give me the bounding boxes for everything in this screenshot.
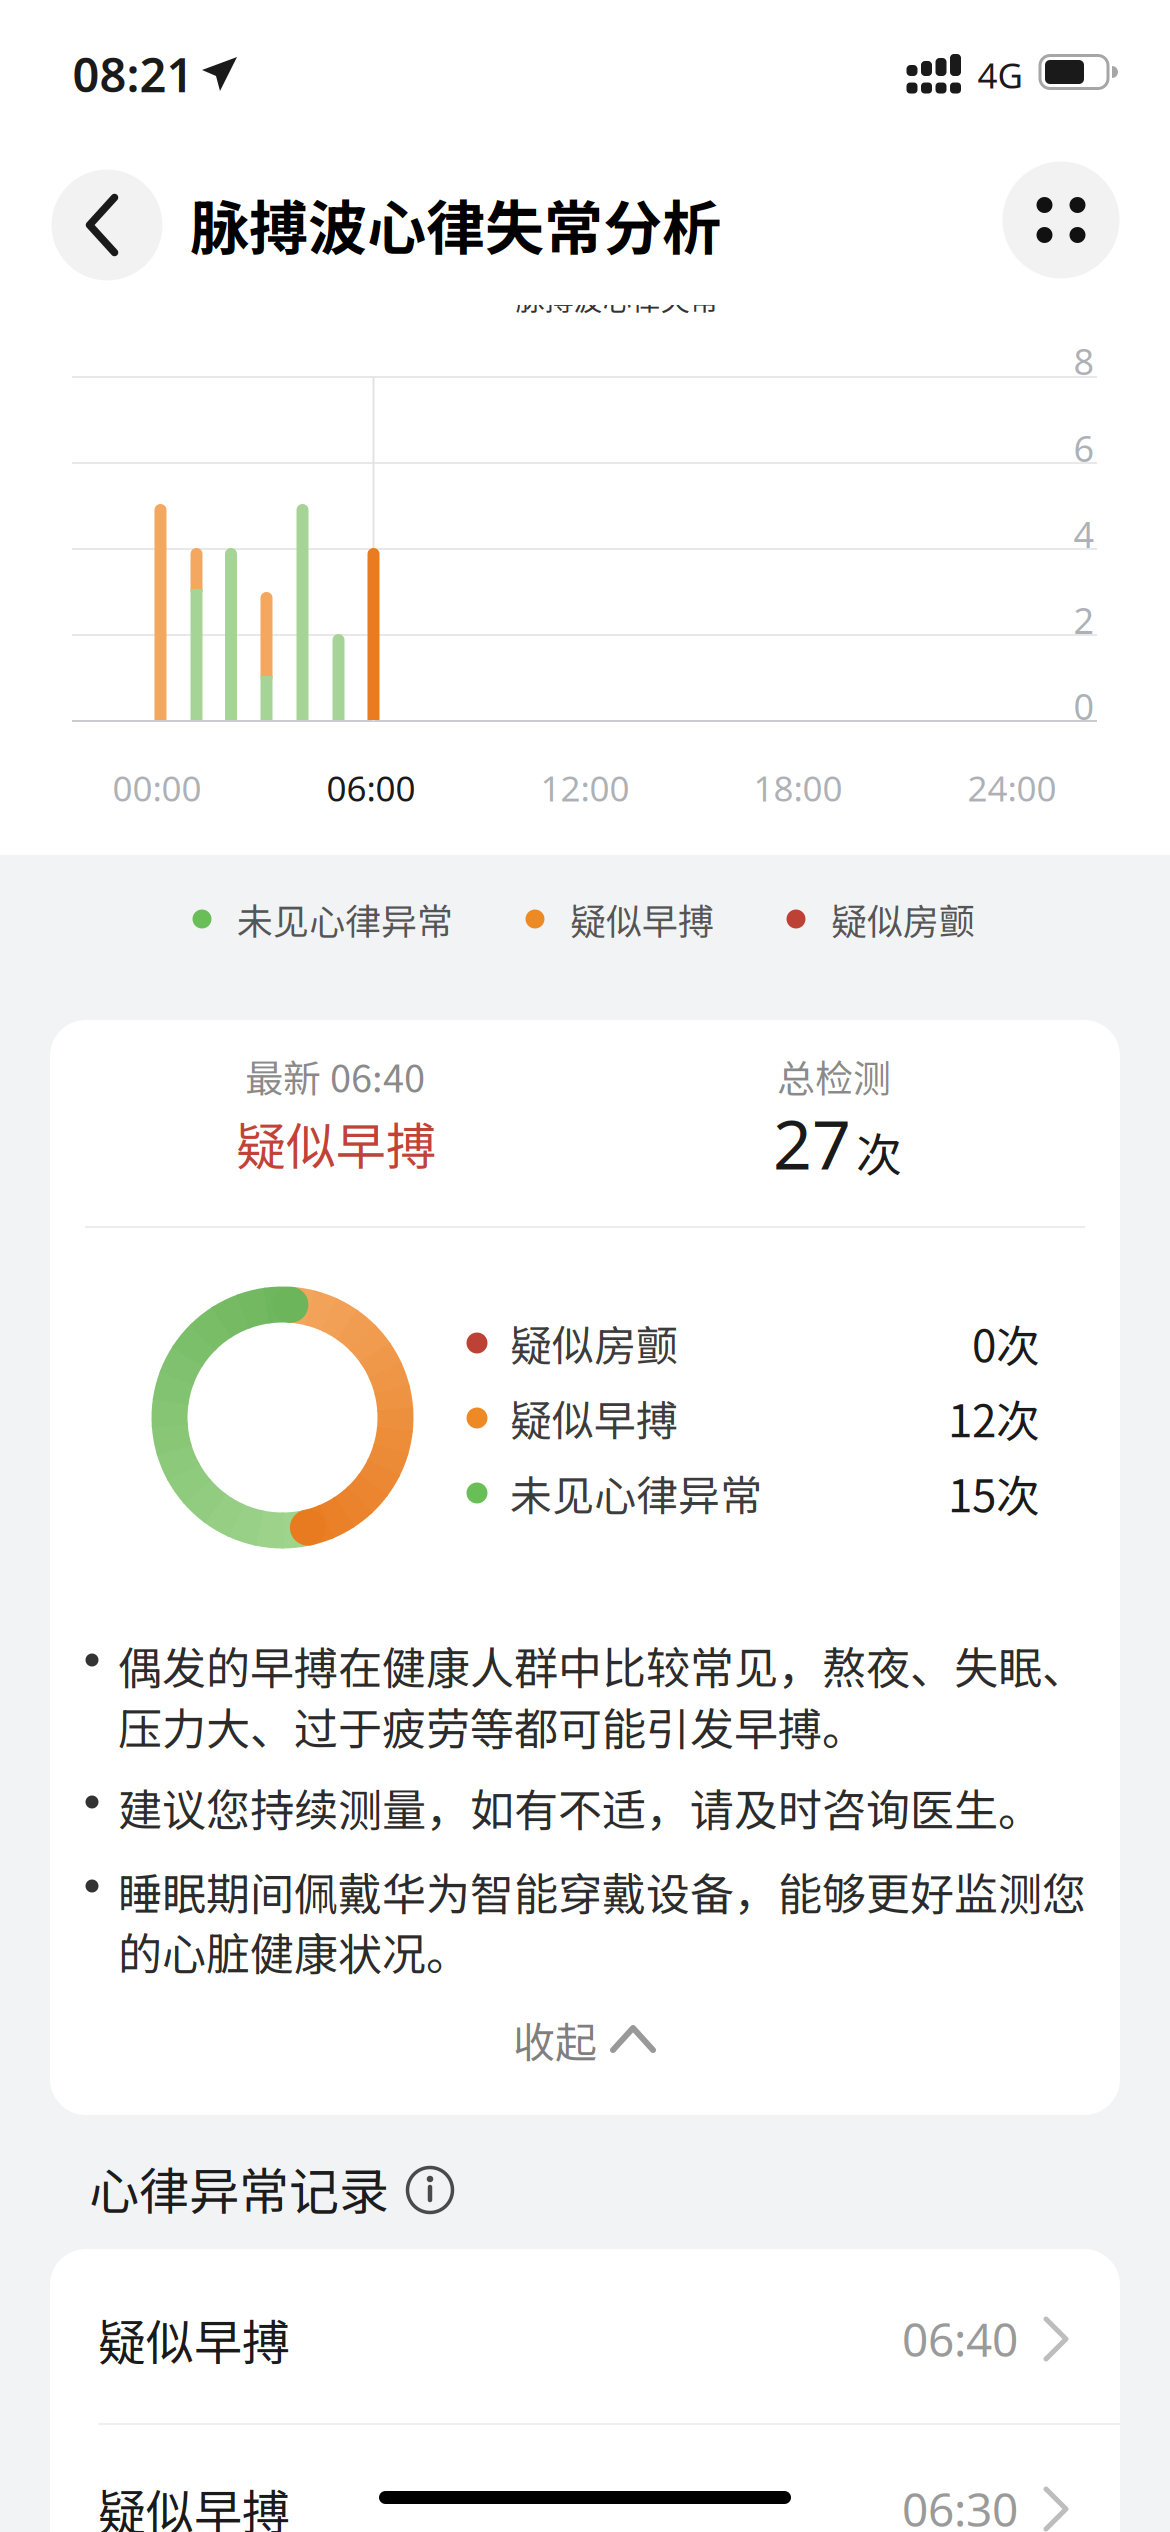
staticText: 8 (1073, 336, 1094, 385)
button[interactable]: 疑似早搏 (50, 2256, 1120, 2422)
staticText: 06:00 (326, 764, 415, 812)
staticText: 00:00 (112, 764, 201, 812)
button[interactable]: 收起 (495, 2010, 675, 2070)
staticText: 未见心律异常 (237, 893, 453, 945)
staticText: 0次 (972, 1311, 1040, 1375)
staticText: 4G (977, 51, 1022, 99)
staticText: 06:40 (902, 2308, 1018, 2370)
staticText: 疑似早搏 (570, 893, 714, 945)
staticText: 最新 06:40 (245, 1048, 425, 1103)
staticText: 08:21 (72, 42, 193, 106)
staticText: 疑似早搏 (236, 1107, 436, 1179)
staticText: 睡眠期间佩戴华为智能穿戴设备，能够更好监测您 (118, 1859, 1086, 1923)
button[interactable]: More (1002, 161, 1119, 278)
staticText: 疑似房颤 (510, 1313, 678, 1373)
staticText: 收起 (513, 2010, 597, 2070)
staticText: 次 (856, 1119, 902, 1185)
staticText: 2 (1073, 595, 1094, 644)
staticText: 06:30 (902, 2478, 1018, 2532)
staticText: 未见心律异常 (510, 1463, 762, 1523)
staticText: 的心脏健康状况。 (118, 1919, 470, 1983)
staticText: 18:00 (753, 764, 842, 812)
staticText: 建议您持续测量，如有不适，请及时咨询医生。 (118, 1775, 1042, 1839)
button[interactable]: Info (406, 2166, 454, 2214)
staticText: 心律异常记录 (89, 2152, 389, 2224)
staticText: 12次 (948, 1386, 1040, 1450)
staticText: 27 (773, 1097, 851, 1189)
staticText: 脉搏波心律失常 (515, 277, 718, 319)
staticText: 总检测 (777, 1048, 891, 1103)
staticText: 15次 (948, 1461, 1040, 1525)
staticText: 0 (1073, 681, 1094, 730)
staticText: 6 (1073, 423, 1094, 472)
staticText: 疑似早搏 (510, 1388, 678, 1448)
staticText: 疑似房颤 (831, 893, 975, 945)
staticText: 24:00 (967, 764, 1056, 812)
staticText: 偶发的早搏在健康人群中比较常见，熬夜、失眠、 (118, 1633, 1086, 1697)
staticText: 疑似早搏 (98, 2304, 290, 2374)
staticText: 4 (1073, 509, 1094, 558)
button[interactable]: Back (51, 169, 162, 280)
button[interactable]: 疑似早搏 (50, 2426, 1120, 2532)
staticText: 压力大、过于疲劳等都可能引发早搏。 (118, 1694, 866, 1758)
staticText: 疑似早搏 (98, 2474, 290, 2532)
staticText: 12:00 (540, 764, 629, 812)
staticText: 脉搏波心律失常分析 (190, 181, 721, 267)
